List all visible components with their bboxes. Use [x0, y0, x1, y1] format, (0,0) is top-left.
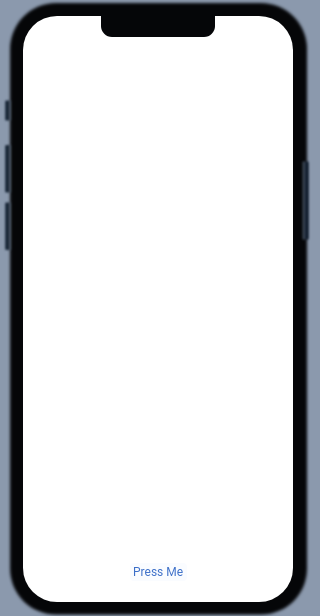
- other: Front camera and sensors: [101, 16, 215, 37]
- staticText: Press Me: [133, 565, 184, 579]
- button[interactable]: Press Me: [130, 563, 187, 581]
